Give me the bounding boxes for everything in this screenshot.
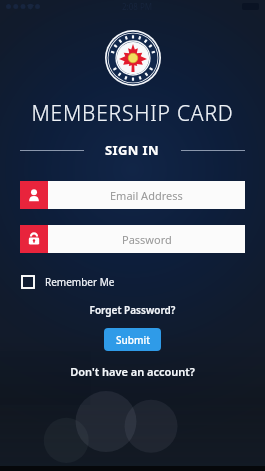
- staticText: Submit: [116, 333, 150, 347]
- button[interactable]: Remember Me: [22, 275, 265, 289]
- staticText: Email Address: [110, 188, 183, 203]
- other: Email: [20, 181, 48, 209]
- staticText: Password: [122, 232, 172, 247]
- button[interactable]: Forget Password?: [0, 303, 265, 317]
- button[interactable]: Submit: [104, 328, 161, 351]
- button[interactable]: Don't have an account?: [0, 364, 265, 379]
- button[interactable]: Password: [20, 225, 245, 253]
- other: Password: [20, 225, 48, 253]
- staticText: 2:08 PM: [122, 1, 153, 12]
- staticText: SIGN IN: [105, 141, 160, 159]
- staticText: MEMBERSHIP CARD: [0, 99, 265, 128]
- button[interactable]: Email: [20, 181, 245, 209]
- staticText: Remember Me: [45, 275, 115, 289]
